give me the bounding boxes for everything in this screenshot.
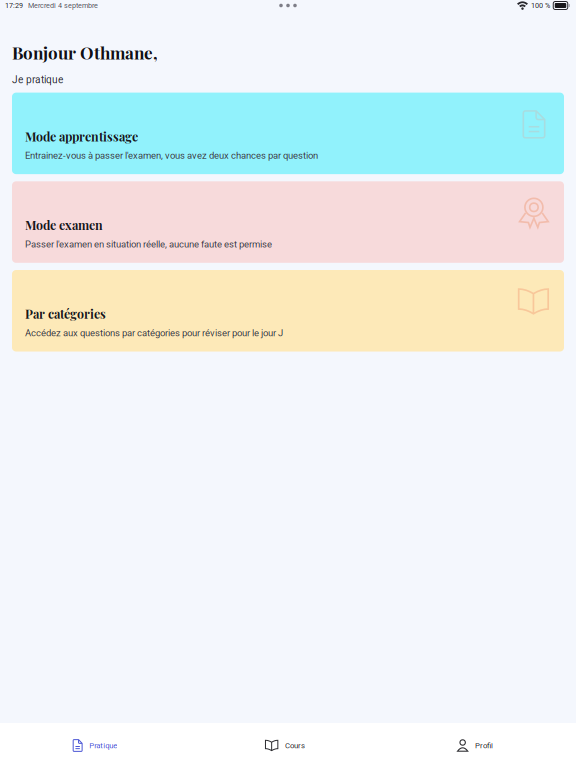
staticText: Mode apprentissage [25, 128, 138, 144]
button[interactable]: Profil [380, 723, 570, 768]
staticText: Accédez aux questions par catégories pou… [25, 327, 283, 338]
staticText: Pratique [89, 741, 117, 750]
staticText: Profil [475, 741, 493, 750]
staticText: 100 % [531, 1, 550, 10]
button[interactable]: Cours [190, 723, 380, 768]
button[interactable]: Mode apprentissage [12, 93, 564, 174]
button[interactable]: Mode examen [12, 181, 564, 263]
staticText: Bonjour Othmane, [12, 41, 158, 64]
staticText: Je pratique [12, 74, 63, 86]
staticText: 17:29 [5, 1, 23, 10]
staticText: Par catégories [25, 305, 106, 322]
staticText: Entrainez-vous à passer l'examen, vous a… [25, 150, 318, 161]
staticText: Cours [285, 741, 305, 750]
staticText: Mercredi 4 septembre [28, 1, 98, 10]
button[interactable]: Pratique [0, 723, 190, 768]
button[interactable]: Par catégories [12, 270, 564, 351]
staticText: Mode examen [25, 217, 103, 233]
staticText: Passer l'examen en situation réelle, auc… [25, 239, 272, 250]
